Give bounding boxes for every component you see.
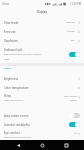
staticText: Filter out blue light to reduce strain (4, 136, 32, 138)
button[interactable]: Home (36, 140, 48, 150)
staticText: Off (71, 39, 75, 42)
staticText: Eye comfort (4, 131, 20, 135)
button[interactable]: Recents (60, 140, 72, 150)
staticText: Normal (67, 30, 75, 33)
staticText: After 1 minute of inactivity (63, 95, 77, 102)
staticText: Auto-rotate screen (4, 114, 29, 118)
button[interactable]: Eye comfort (0, 129, 84, 148)
staticText: Increase readability (4, 123, 30, 127)
button[interactable]: View mode (0, 18, 84, 27)
button[interactable]: Toggle (69, 122, 80, 127)
staticText: Screen (4, 67, 12, 70)
staticText: Medium (66, 21, 75, 24)
button[interactable]: Brightness (0, 74, 84, 83)
staticText: Sleep (4, 94, 12, 98)
button[interactable]: Indicator light (0, 45, 84, 63)
staticText: Font size (4, 30, 16, 34)
button[interactable]: Auto-rotate screen (0, 111, 84, 120)
staticText: Daydream (4, 39, 18, 43)
staticText: Screen turns off if no use (4, 99, 24, 101)
staticText: Off (74, 132, 77, 134)
staticText: Color temperature (4, 86, 29, 90)
staticText: Brightness (4, 77, 19, 81)
button[interactable]: Back (12, 140, 24, 150)
button[interactable]: Toggle (69, 113, 80, 118)
staticText: 12:34 PM (70, 2, 82, 6)
staticText: View mode (4, 21, 19, 25)
staticText: Ghost (2, 2, 10, 6)
button[interactable]: Toggle (69, 52, 80, 57)
button[interactable]: Daydream (0, 36, 84, 45)
button[interactable]: Increase readability (0, 120, 84, 129)
button[interactable]: Color temperature (0, 83, 84, 92)
staticText: Indicator light (4, 48, 23, 52)
button[interactable]: Sleep (0, 92, 84, 111)
staticText: Blinking status indicator light when a n… (4, 53, 42, 60)
button[interactable]: Font size (0, 27, 84, 36)
staticText: Display (37, 10, 48, 14)
